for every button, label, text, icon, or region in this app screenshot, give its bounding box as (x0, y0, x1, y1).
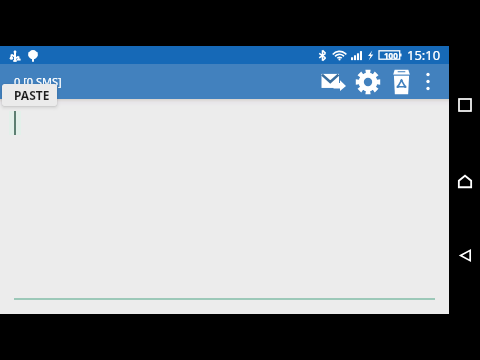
button[interactable]: PASTE (2, 84, 57, 106)
button[interactable]: Delete (385, 64, 418, 99)
staticText: 15:10 (407, 46, 441, 64)
button[interactable]: Home (451, 167, 479, 195)
button[interactable]: Back (451, 241, 479, 269)
button[interactable]: More options (418, 64, 437, 99)
button[interactable]: Recents (451, 91, 479, 119)
staticText: 0 [0 SMS] (14, 74, 62, 89)
button[interactable]: Settings (351, 64, 385, 99)
staticText: 100 (384, 50, 398, 61)
staticText: PASTE (14, 87, 50, 103)
button[interactable]: Send message (315, 64, 351, 99)
